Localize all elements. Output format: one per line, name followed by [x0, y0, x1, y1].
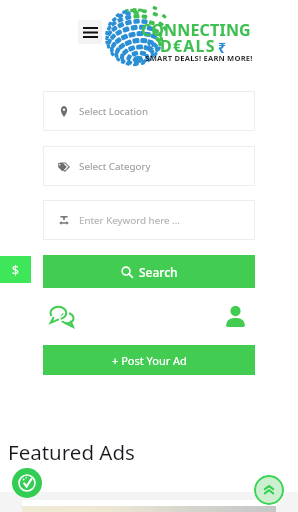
button[interactable]: Chat — [46, 302, 78, 330]
staticText: CONNECTING — [141, 19, 251, 41]
button[interactable]: Scroll to top — [254, 475, 284, 505]
button[interactable]: Enter Keyword here ... — [43, 200, 255, 240]
staticText: SMART DEALS! EARN MORE! — [145, 53, 253, 63]
button[interactable]: Select Category — [43, 146, 255, 186]
staticText: Select Category — [79, 160, 151, 173]
staticText: D€ALS — [160, 35, 216, 57]
button[interactable]: Deals — [12, 468, 42, 498]
button[interactable]: Select Location — [43, 91, 255, 131]
button[interactable]: Currency — [0, 256, 31, 283]
button[interactable]: Profile — [219, 302, 251, 330]
staticText: + Post Your Ad — [112, 353, 187, 368]
staticText: Enter Keyword here ... — [79, 214, 180, 227]
staticText: Featured Ads — [8, 438, 135, 466]
staticText: ₹ — [218, 38, 227, 57]
button[interactable]: + Post Your Ad — [43, 345, 255, 375]
staticText: Select Location — [79, 105, 149, 118]
staticText: Search — [139, 264, 178, 280]
button[interactable]: Menu — [78, 20, 102, 44]
staticText: $ — [12, 262, 19, 278]
button[interactable]: Search — [43, 255, 255, 288]
staticText: ¥ — [147, 38, 156, 57]
button[interactable] — [22, 500, 276, 512]
